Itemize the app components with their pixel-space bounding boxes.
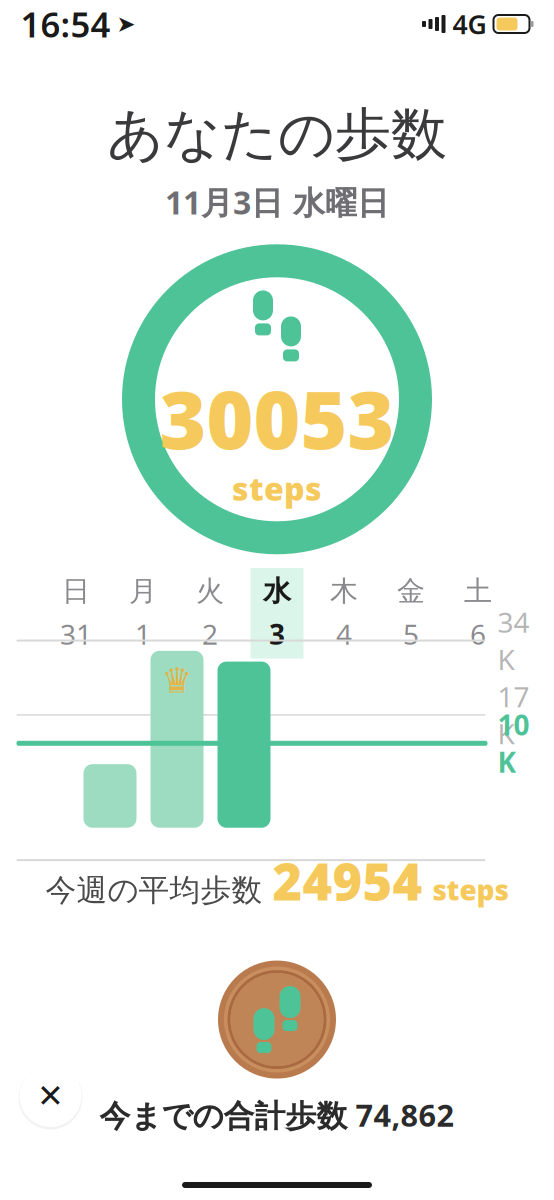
- staticText: ➤: [116, 11, 135, 37]
- staticText: 4: [336, 615, 352, 653]
- staticText: 今週の平均歩数: [45, 871, 262, 909]
- staticText: 34K: [497, 603, 529, 678]
- staticText: steps: [232, 467, 322, 510]
- staticText: ✕: [37, 1078, 64, 1114]
- staticText: steps: [432, 871, 508, 908]
- staticText: 水: [263, 574, 291, 608]
- staticText: 11月3日 水曜日: [165, 181, 389, 223]
- staticText: 16:54: [20, 1, 110, 47]
- staticText: 月: [129, 574, 157, 608]
- staticText: 6: [470, 615, 486, 653]
- staticText: ♛: [161, 661, 192, 700]
- staticText: 5: [403, 615, 419, 653]
- staticText: 24954: [272, 847, 422, 915]
- button[interactable]: Close: [16, 1062, 84, 1130]
- staticText: 31: [60, 615, 92, 653]
- staticText: 2: [202, 615, 218, 653]
- staticText: 10K: [497, 706, 529, 780]
- staticText: 1: [135, 615, 151, 653]
- staticText: 3: [269, 615, 285, 653]
- staticText: あなたの歩数: [107, 100, 447, 169]
- staticText: 4G: [452, 6, 486, 42]
- staticText: 土: [464, 574, 492, 608]
- staticText: 日: [62, 574, 90, 608]
- staticText: 金: [397, 574, 425, 608]
- staticText: 17K: [497, 678, 529, 752]
- staticText: 30053: [159, 365, 394, 471]
- staticText: 木: [330, 574, 358, 608]
- staticText: 火: [196, 574, 224, 608]
- staticText: 今までの合計歩数 74,862: [99, 1095, 454, 1135]
